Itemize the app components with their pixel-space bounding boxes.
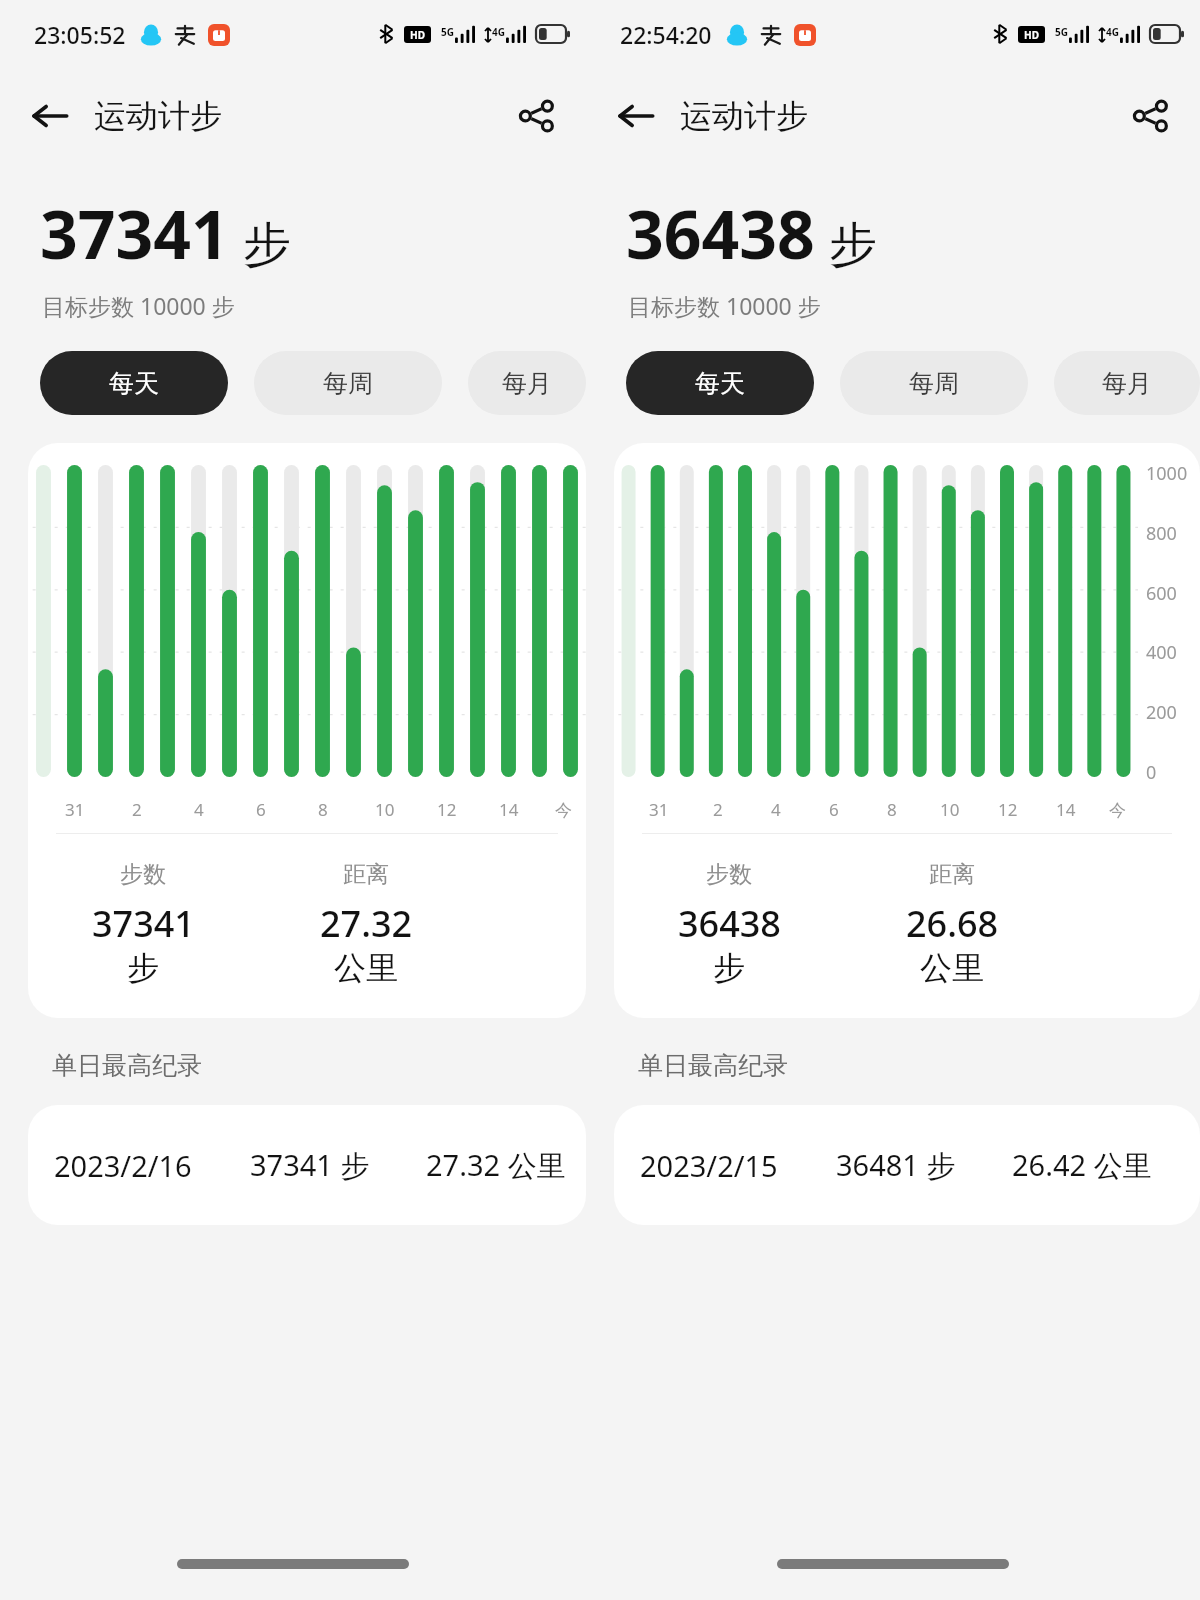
staticText: 5G	[1055, 25, 1068, 39]
staticText: 4G	[492, 25, 505, 39]
staticText: 2023/2/16	[54, 1146, 192, 1185]
staticText: HD	[410, 28, 425, 42]
staticText: 10	[940, 798, 960, 821]
staticText: 今日	[1109, 800, 1138, 821]
staticText: 400	[1146, 640, 1177, 665]
staticText: 运动计步	[94, 96, 222, 136]
staticText: 36481 步	[836, 1145, 956, 1185]
staticText: 目标步数 10000 步	[628, 290, 821, 321]
staticText: 26.68	[906, 899, 999, 948]
staticText: 8	[318, 798, 328, 821]
staticText: 12	[998, 798, 1018, 821]
staticText: 36438	[626, 188, 815, 278]
staticText: 0	[1146, 760, 1157, 785]
staticText: 步数	[120, 860, 166, 889]
staticText: 14	[1056, 798, 1076, 821]
staticText: 31	[65, 798, 85, 821]
staticText: 26.42 公里	[1012, 1145, 1152, 1185]
staticText: 5G	[441, 25, 454, 39]
staticText: 公里	[920, 948, 984, 988]
button[interactable]: Back	[20, 86, 80, 146]
button[interactable]: Share	[506, 86, 566, 146]
staticText: 37341	[92, 899, 195, 948]
staticText: 36438	[678, 899, 781, 948]
button[interactable]: 每周	[254, 351, 442, 415]
button[interactable]: 2023/2/15	[614, 1105, 1200, 1225]
button[interactable]: 每月	[468, 351, 586, 415]
staticText: 每周	[909, 368, 959, 399]
staticText: 每周	[323, 368, 373, 399]
staticText: 步	[713, 948, 745, 988]
staticText: 600	[1146, 581, 1177, 606]
staticText: 6	[256, 798, 266, 821]
staticText: 单日最高纪录	[52, 1050, 202, 1081]
staticText: 今日	[555, 800, 586, 821]
staticText: 步	[829, 215, 877, 275]
staticText: 步	[127, 948, 159, 988]
staticText: 单日最高纪录	[638, 1050, 788, 1081]
staticText: 每天	[695, 368, 745, 399]
button[interactable]: 每周	[840, 351, 1028, 415]
staticText: 步	[243, 215, 291, 275]
staticText: 每天	[109, 368, 159, 399]
staticText: 22:54:20	[620, 19, 712, 50]
staticText: 6	[829, 798, 839, 821]
button[interactable]: Back	[606, 86, 666, 146]
button[interactable]: Share	[1120, 86, 1180, 146]
staticText: 200	[1146, 700, 1177, 725]
staticText: 12	[437, 798, 457, 821]
staticText: 目标步数 10000 步	[42, 290, 235, 321]
staticText: 2	[713, 798, 723, 821]
staticText: 每月	[502, 368, 552, 399]
staticText: 14	[499, 798, 519, 821]
button[interactable]: 每天	[626, 351, 814, 415]
staticText: 31	[649, 798, 669, 821]
staticText: 10	[375, 798, 395, 821]
staticText: 800	[1146, 521, 1177, 546]
staticText: HD	[1024, 28, 1039, 42]
staticText: 8	[887, 798, 897, 821]
button[interactable]: 2023/2/16	[28, 1105, 586, 1225]
staticText: 4	[194, 798, 204, 821]
staticText: 27.32 公里	[426, 1145, 566, 1185]
staticText: 公里	[334, 948, 398, 988]
staticText: 4G	[1106, 25, 1119, 39]
staticText: 1000	[1146, 461, 1188, 486]
staticText: 37341 步	[250, 1145, 370, 1185]
staticText: 运动计步	[680, 96, 808, 136]
button[interactable]: 每月	[1054, 351, 1200, 415]
staticText: 37341	[40, 188, 229, 278]
staticText: 每月	[1102, 368, 1152, 399]
staticText: 距离	[929, 860, 975, 889]
staticText: 2	[132, 798, 142, 821]
staticText: 步数	[706, 860, 752, 889]
staticText: 27.32	[320, 899, 413, 948]
staticText: 2023/2/15	[640, 1146, 778, 1185]
staticText: 4	[771, 798, 781, 821]
staticText: 23:05:52	[34, 19, 126, 50]
button[interactable]: 每天	[40, 351, 228, 415]
staticText: 距离	[343, 860, 389, 889]
